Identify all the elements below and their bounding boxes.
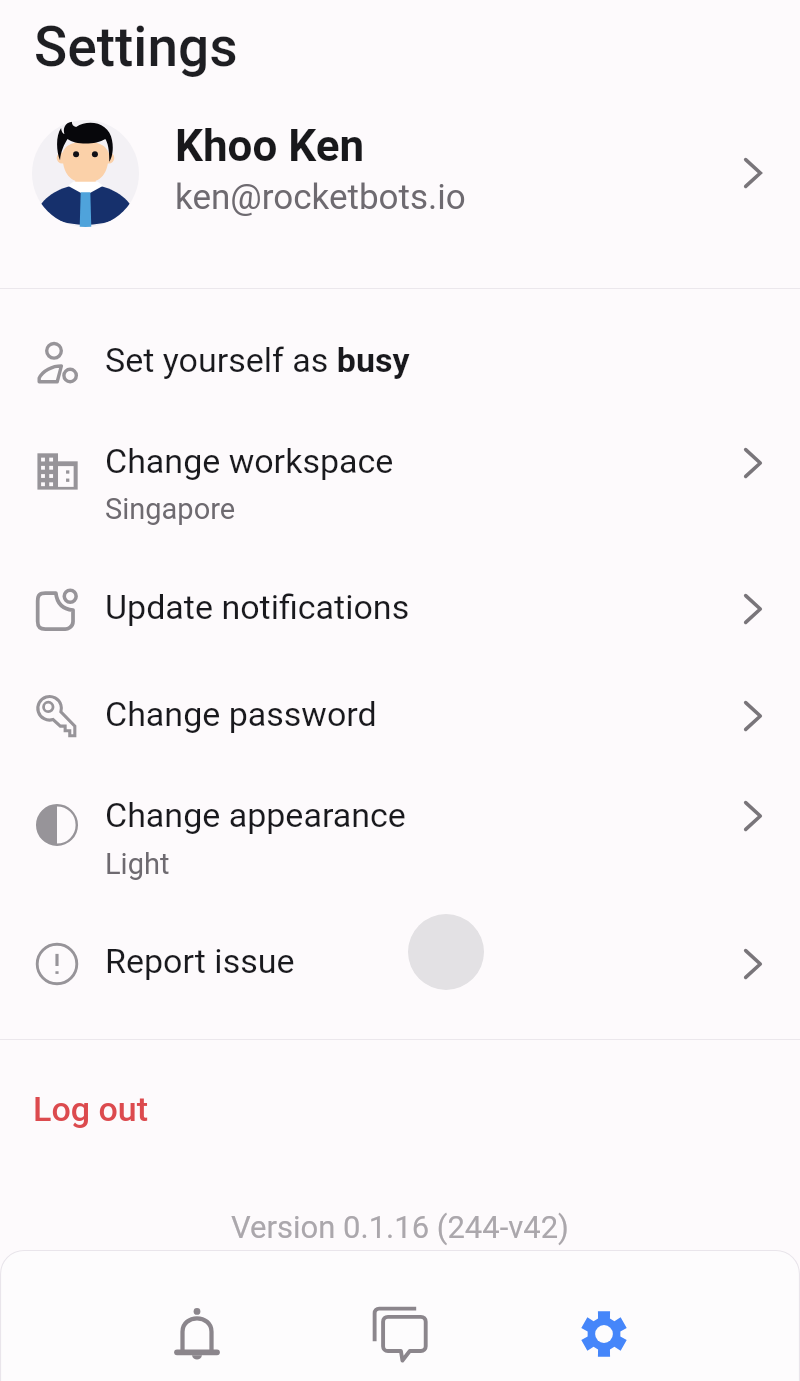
staticText: Log out [33, 1089, 149, 1129]
staticText: Update notifications [105, 587, 410, 627]
staticText: Change workspace [105, 441, 394, 481]
staticText: Set yourself as busy [105, 340, 410, 380]
staticText: Change appearance [105, 795, 406, 835]
staticText: Report issue [105, 941, 295, 981]
staticText: Version 0.1.16 (244-v42) [231, 1209, 569, 1245]
staticText: Light [105, 847, 170, 881]
staticText: Khoo Ken [175, 120, 365, 172]
button[interactable]: Report issue [0, 918, 800, 1010]
staticText: ken@rocketbots.io [175, 177, 466, 218]
staticText: Change password [105, 694, 377, 734]
button[interactable]: Settings [564, 1250, 643, 1381]
button[interactable]: Messages [360, 1250, 440, 1381]
button[interactable]: Notifications [157, 1250, 236, 1381]
button[interactable]: Update notifications [0, 565, 800, 653]
button[interactable]: Set yourself as busy [0, 318, 800, 406]
button[interactable]: Change password [0, 672, 800, 760]
staticText: Singapore [105, 492, 236, 526]
button[interactable]: Change workspace [0, 418, 800, 548]
button[interactable]: Log out [0, 1070, 800, 1158]
staticText: Settings [34, 15, 238, 79]
button[interactable]: Change appearance [0, 770, 800, 900]
button[interactable]: Khoo Ken [0, 90, 800, 288]
